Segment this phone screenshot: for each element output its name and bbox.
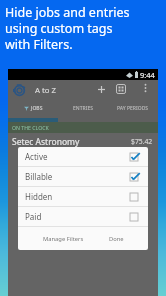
button[interactable]: Done xyxy=(98,227,134,250)
staticText: PAY PERIODS xyxy=(117,105,149,112)
button[interactable]: Setec Astronomy xyxy=(8,133,158,150)
staticText: Manage Filters xyxy=(43,235,84,243)
button[interactable]: Widgets xyxy=(113,81,129,97)
button[interactable]: Billable xyxy=(18,167,148,186)
staticText: Setec Astronomy xyxy=(12,136,80,148)
staticText: JOBS xyxy=(31,105,43,112)
button[interactable]: JOBS xyxy=(8,98,58,118)
button[interactable]: More options xyxy=(138,81,152,95)
button[interactable]: Paid xyxy=(18,207,148,226)
staticText: 9:44 xyxy=(140,70,155,80)
staticText: Hide jobs and entries using custom tags … xyxy=(5,4,130,53)
staticText: Hidden xyxy=(25,191,53,202)
staticText: $75.42 xyxy=(131,137,153,146)
button[interactable]: ENTRIES xyxy=(58,98,108,118)
button[interactable]: Hidden xyxy=(18,187,148,206)
staticText: ENTRIES xyxy=(73,105,93,112)
button[interactable]: Add xyxy=(93,81,109,97)
staticText: Done xyxy=(109,235,124,243)
staticText: A to Z xyxy=(35,85,57,96)
staticText: Active xyxy=(25,151,48,162)
staticText: ON THE CLOCK xyxy=(12,124,49,131)
staticText: Billable xyxy=(25,171,53,182)
button[interactable]: Active xyxy=(18,147,148,166)
button[interactable]: Manage Filters xyxy=(36,227,90,250)
button[interactable]: Open navigation drawer xyxy=(11,82,27,98)
staticText: Paid xyxy=(25,211,42,222)
button[interactable]: PAY PERIODS xyxy=(108,98,158,118)
